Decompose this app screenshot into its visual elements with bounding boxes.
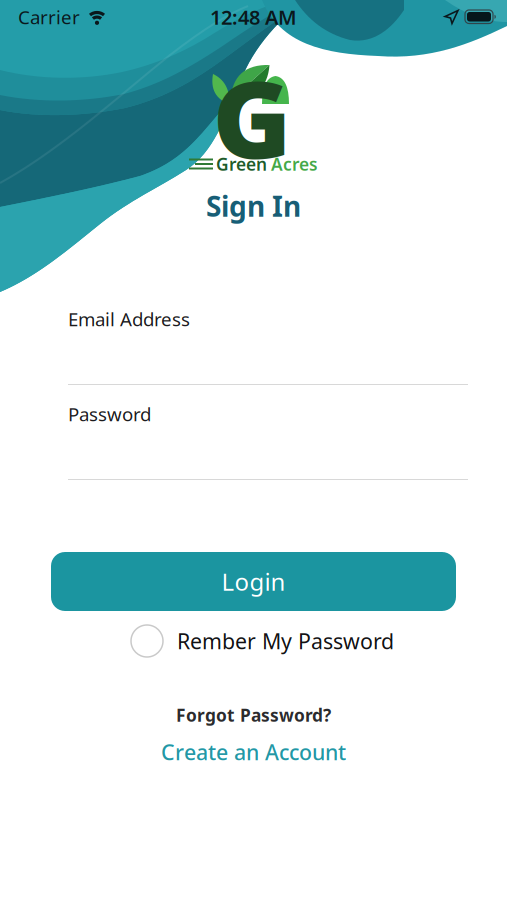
staticText: Login xyxy=(221,566,285,597)
staticText: G xyxy=(212,46,291,188)
staticText: Forgot Password? xyxy=(176,703,331,726)
staticText: Sign In xyxy=(206,187,301,225)
staticText: 12:48 AM xyxy=(210,4,297,30)
staticText: Green xyxy=(216,152,267,175)
staticText: Create an Account xyxy=(161,738,346,766)
staticText: Email Address xyxy=(68,307,190,331)
button[interactable]: Password xyxy=(0,402,507,480)
button[interactable]: Rember My Password xyxy=(113,625,394,657)
staticText: Acres xyxy=(271,152,318,175)
button[interactable]: Login xyxy=(51,552,456,611)
staticText: Password xyxy=(68,402,151,426)
staticText: Rember My Password xyxy=(177,627,394,655)
staticText: Carrier xyxy=(18,5,80,29)
button[interactable]: Create an Account xyxy=(161,738,346,766)
button[interactable]: Forgot Password? xyxy=(176,703,331,726)
button[interactable]: Email Address xyxy=(0,307,507,385)
